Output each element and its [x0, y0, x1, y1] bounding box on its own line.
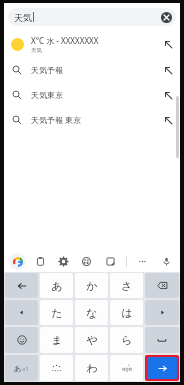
- button[interactable]: Undo: [5, 273, 38, 298]
- button[interactable]: Symbols: [110, 355, 143, 381]
- button[interactable]: More options: [134, 253, 151, 270]
- button[interactable]: 天気東京: [4, 82, 180, 107]
- staticText: あ: [14, 364, 22, 373]
- staticText: 天気予報 東京: [31, 114, 161, 125]
- button[interactable]: 天気予報: [4, 57, 180, 82]
- button[interactable]: Switch input mode: [5, 355, 38, 381]
- button[interactable]: か: [75, 273, 108, 298]
- staticText: X°C 水 - XXXXXXXX: [31, 35, 99, 46]
- staticText: か: [86, 279, 98, 293]
- staticText: わ: [86, 361, 98, 375]
- button[interactable]: Voice input: [158, 253, 175, 270]
- button[interactable]: Enter: [147, 357, 177, 379]
- button[interactable]: Google: [9, 253, 26, 270]
- staticText: さ: [121, 279, 133, 293]
- staticText: あ: [51, 279, 63, 293]
- staticText: や: [86, 333, 98, 347]
- button[interactable]: あ: [40, 273, 73, 298]
- staticText: a1: [22, 365, 29, 373]
- button[interactable]: Clear: [159, 10, 173, 24]
- button[interactable]: Clipboard: [32, 253, 49, 270]
- button[interactable]: Cursor right: [145, 300, 179, 325]
- button[interactable]: Emoji: [5, 327, 38, 353]
- button[interactable]: Insert suggestion: [161, 63, 175, 77]
- button[interactable]: ら: [110, 327, 143, 353]
- button[interactable]: Cursor left: [5, 300, 38, 325]
- button[interactable]: Insert suggestion: [161, 113, 175, 127]
- button[interactable]: Space: [145, 327, 179, 353]
- staticText: 天気予報: [31, 65, 161, 75]
- staticText: た: [51, 306, 63, 320]
- staticText: ら: [121, 333, 133, 347]
- button[interactable]: X°C 水 - XXXXXXXX: [4, 31, 180, 57]
- button[interactable]: Sticker: [102, 253, 119, 270]
- button[interactable]: ま: [40, 327, 73, 353]
- button[interactable]: Punctuation: [40, 355, 73, 381]
- button[interactable]: な: [75, 300, 108, 325]
- button[interactable]: Theme: [78, 253, 95, 270]
- button[interactable]: Settings: [55, 253, 72, 270]
- button[interactable]: 天気: [8, 8, 176, 26]
- button[interactable]: 天気予報 東京: [4, 107, 180, 132]
- button[interactable]: わ: [75, 355, 108, 381]
- button[interactable]: Insert suggestion: [161, 37, 175, 51]
- button[interactable]: Insert suggestion: [161, 88, 175, 102]
- button[interactable]: は: [110, 300, 143, 325]
- staticText: 天気: [14, 12, 32, 23]
- staticText: 天気: [31, 47, 42, 54]
- staticText: 天気東京: [31, 90, 161, 100]
- staticText: は: [121, 306, 133, 320]
- button[interactable]: た: [40, 300, 73, 325]
- button[interactable]: Backspace: [145, 273, 179, 298]
- staticText: ま: [51, 333, 63, 347]
- button[interactable]: や: [75, 327, 108, 353]
- staticText: な: [86, 306, 98, 320]
- button[interactable]: さ: [110, 273, 143, 298]
